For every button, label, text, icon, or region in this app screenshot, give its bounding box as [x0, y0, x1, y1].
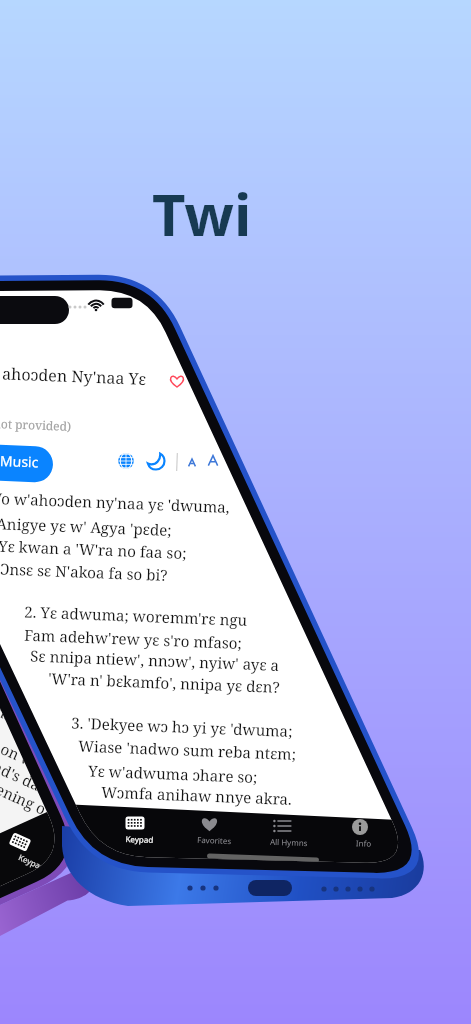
- button[interactable]: Twi: [152, 174, 252, 253]
